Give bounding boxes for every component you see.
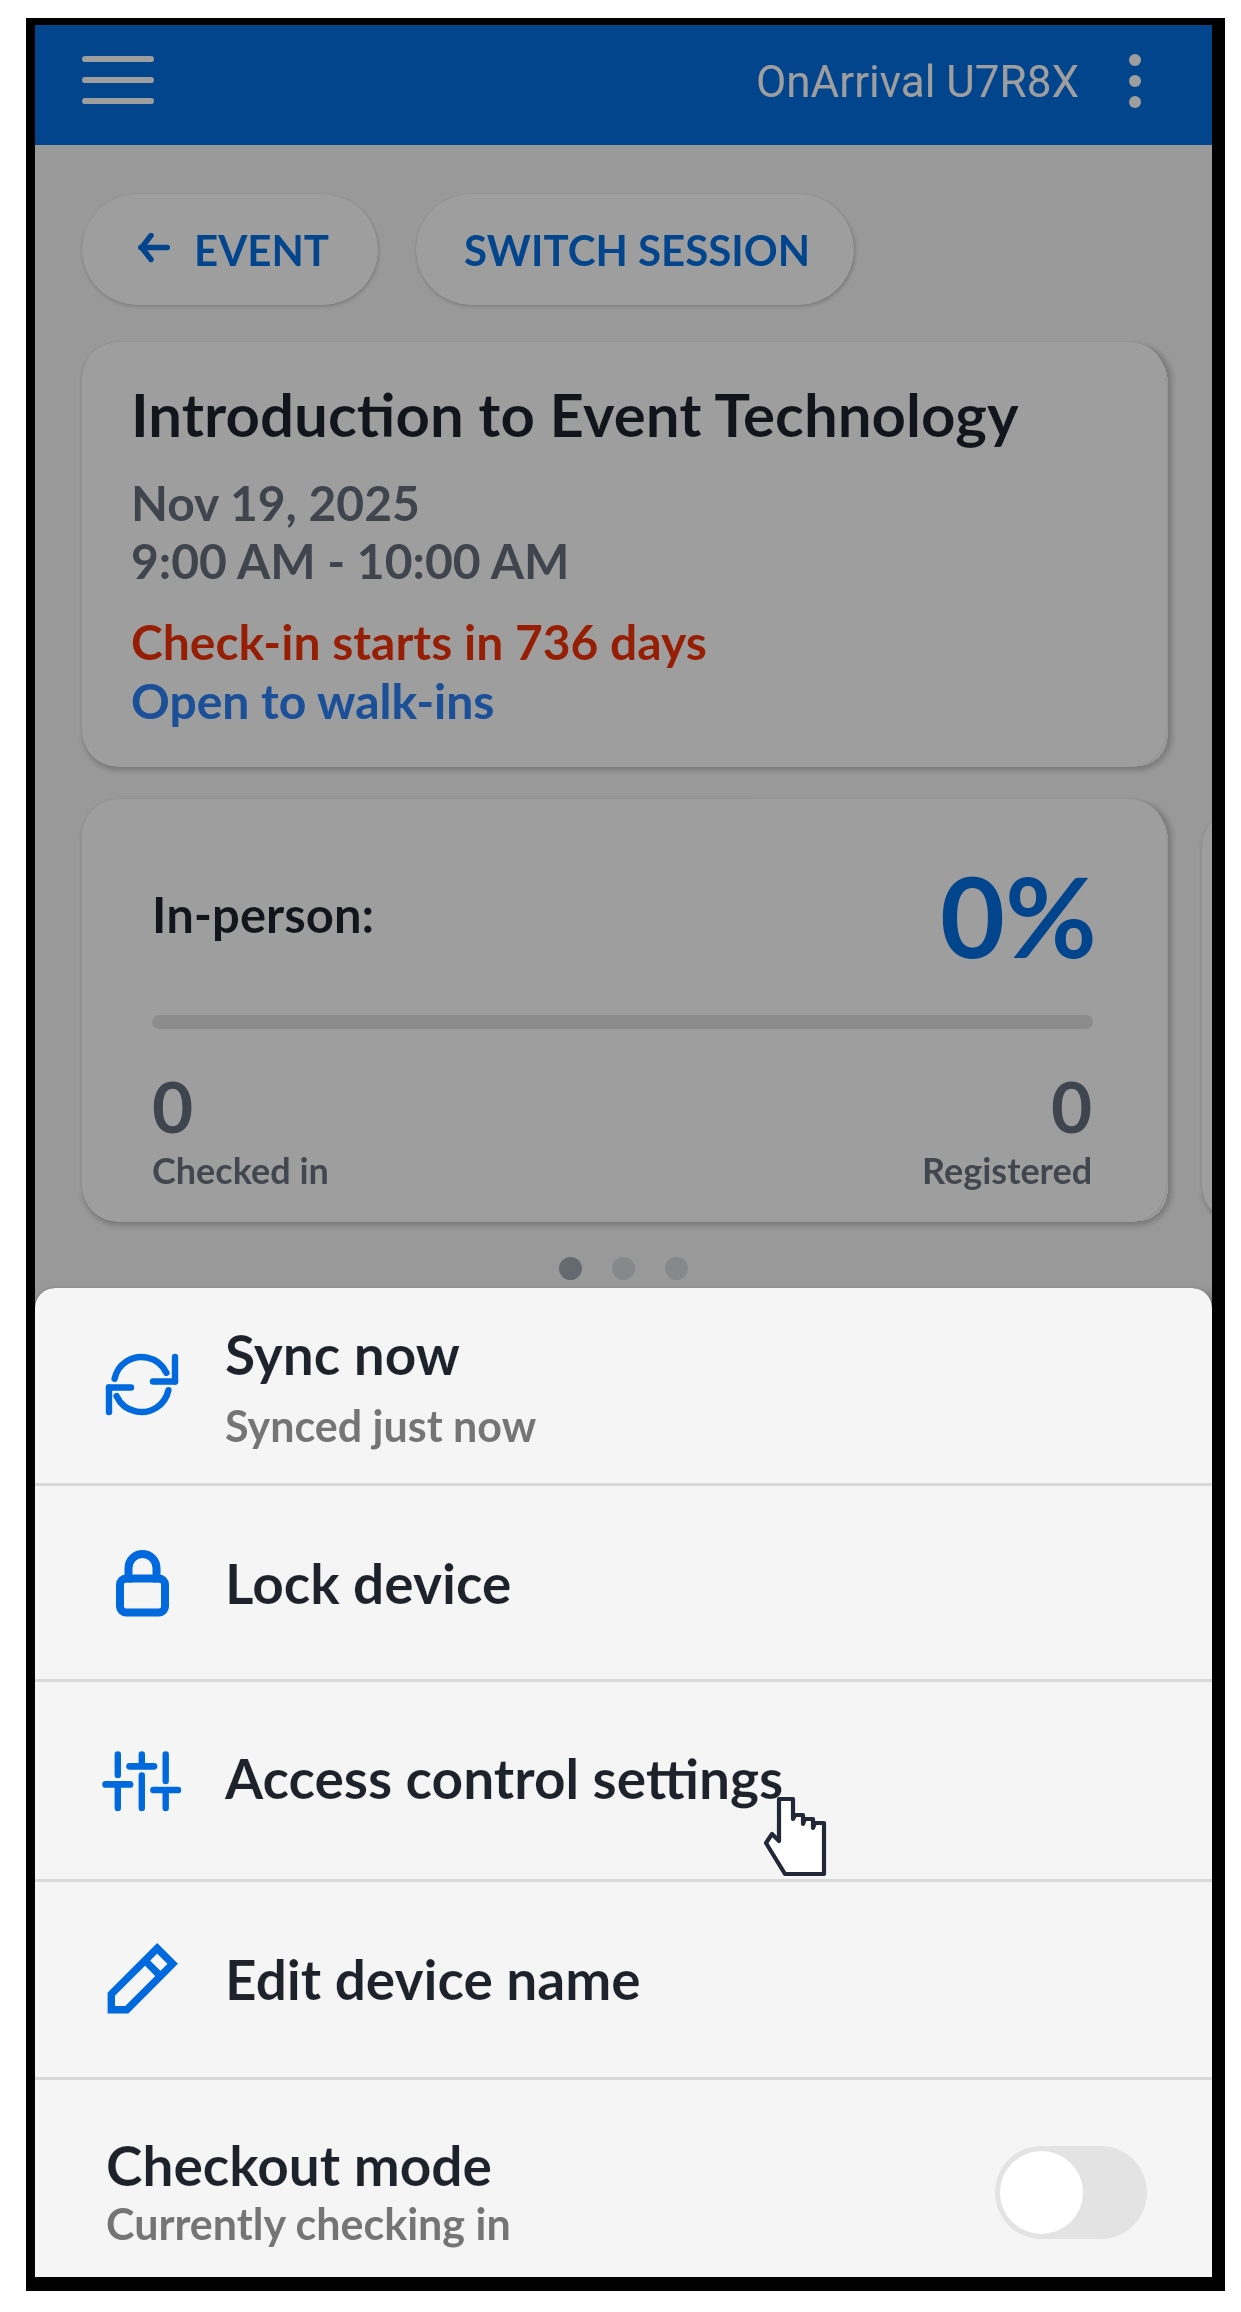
staticText: Lock device bbox=[225, 1550, 512, 1616]
button[interactable]: SWITCH SESSION bbox=[416, 194, 854, 305]
button[interactable]: Introduction to Event Technology bbox=[82, 342, 1166, 767]
button[interactable]: EVENT bbox=[82, 194, 378, 305]
staticText: SWITCH SESSION bbox=[464, 225, 810, 275]
button[interactable]: In-person: bbox=[82, 799, 1166, 1222]
staticText: Sync now bbox=[225, 1321, 460, 1387]
staticText: 0% bbox=[940, 847, 1097, 981]
staticText: Currently checking in bbox=[106, 2198, 511, 2250]
staticText: Registered bbox=[922, 1148, 1093, 1191]
staticText: Checkout mode bbox=[106, 2132, 492, 2198]
staticText: Nov 19, 2025 bbox=[131, 474, 420, 532]
button[interactable]: Edit device name bbox=[35, 1882, 1212, 2077]
staticText: Checked in bbox=[152, 1148, 329, 1191]
button[interactable]: Lock device bbox=[35, 1486, 1212, 1679]
staticText: OnArrival U7R8X bbox=[756, 56, 1080, 108]
staticText: 0 bbox=[152, 1063, 194, 1148]
button[interactable]: Checkout mode bbox=[35, 2080, 1212, 2277]
button[interactable]: More options bbox=[1087, 32, 1183, 128]
button[interactable]: Access control settings bbox=[35, 1682, 1212, 1879]
staticText: 0 bbox=[1051, 1063, 1093, 1148]
staticText: Synced just now bbox=[225, 1400, 537, 1452]
staticText: EVENT bbox=[194, 225, 330, 275]
button[interactable]: Open navigation menu bbox=[58, 32, 154, 128]
staticText: Open to walk-ins bbox=[131, 672, 495, 730]
staticText: 9:00 AM - 10:00 AM bbox=[131, 532, 570, 590]
button[interactable]: Sync now bbox=[35, 1288, 1212, 1483]
staticText: Check-in starts in 736 days bbox=[131, 613, 707, 671]
staticText: Introduction to Event Technology bbox=[131, 378, 1019, 450]
staticText: Edit device name bbox=[225, 1946, 641, 2012]
staticText: In-person: bbox=[152, 885, 375, 944]
staticText: Access control settings bbox=[225, 1745, 784, 1811]
